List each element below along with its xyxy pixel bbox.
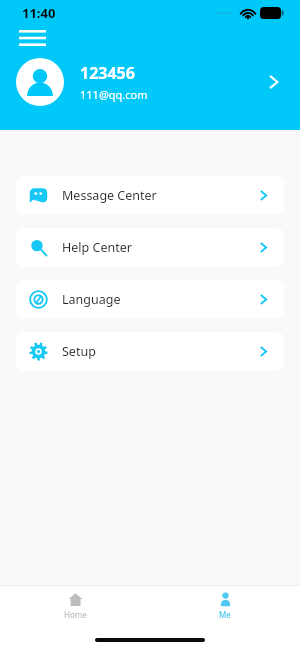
button[interactable]: Setup bbox=[16, 332, 284, 371]
staticText: Help Center bbox=[62, 239, 132, 256]
staticText: Message Center bbox=[62, 187, 157, 204]
staticText: 111@qq.com bbox=[80, 87, 148, 102]
button[interactable]: 123456 bbox=[0, 52, 300, 112]
button[interactable]: Language bbox=[16, 280, 284, 319]
staticText: Home bbox=[64, 609, 87, 620]
staticText: Setup bbox=[62, 343, 96, 360]
button[interactable]: Me bbox=[150, 586, 300, 626]
staticText: 11:40 bbox=[22, 4, 56, 22]
button[interactable]: Message Center bbox=[16, 176, 284, 215]
button[interactable]: Home bbox=[0, 586, 150, 626]
button[interactable]: Menu bbox=[14, 26, 50, 50]
staticText: Me bbox=[219, 609, 231, 620]
button[interactable]: Help Center bbox=[16, 228, 284, 267]
staticText: Language bbox=[62, 291, 121, 308]
staticText: 123456 bbox=[80, 62, 135, 84]
